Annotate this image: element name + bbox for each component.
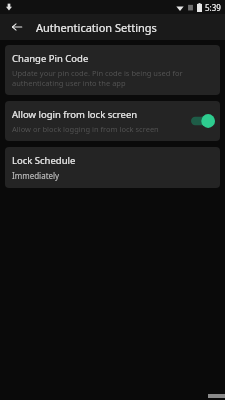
staticText: Update your pin code. Pin code is being … [12,68,213,88]
staticText: Allow or block logging in from lock scre… [12,124,159,134]
button[interactable]: Allow login from lock screen [5,101,220,141]
button[interactable]: Change Pin Code [5,45,220,95]
button[interactable]: Allow login from lock screen toggle [191,113,215,129]
staticText: Lock Schedule [12,154,76,167]
button[interactable]: Lock Schedule [5,147,220,188]
staticText: 5:39 [205,2,221,13]
staticText: Immediately [12,170,60,181]
staticText: Change Pin Code [12,52,89,65]
staticText: Authentication Settings [36,20,157,35]
button[interactable]: Back [6,16,28,38]
staticText: Allow login from lock screen [12,108,138,121]
